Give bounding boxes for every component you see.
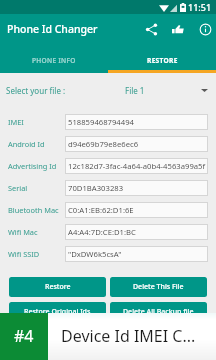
button[interactable]: About — [198, 22, 212, 36]
staticText: Android Id — [8, 139, 65, 149]
staticText: 11:51 — [188, 1, 212, 13]
button[interactable]: Delete All Backup file — [110, 302, 207, 322]
button[interactable]: Restore — [9, 277, 106, 297]
button[interactable]: IMEI — [0, 111, 216, 133]
staticText: RESTORE — [147, 56, 178, 65]
staticText: Restore — [45, 282, 71, 292]
button[interactable]: Wifi SSID — [0, 243, 216, 265]
staticText: Bluetooth Mac — [8, 205, 65, 215]
button[interactable]: Bluetooth Mac — [0, 199, 216, 221]
staticText: Wifi Mac — [8, 227, 65, 237]
staticText: 12c182d7-3fac-4a64-a0b4-4563a99a5f — [68, 161, 206, 171]
staticText: C0:A1:EB:62:D1:6E — [68, 205, 134, 215]
staticText: Device Id IMEI C... — [61, 325, 196, 347]
button[interactable]: PHONE INFO — [0, 45, 108, 73]
button[interactable]: Share — [144, 22, 158, 36]
staticText: "DxDW6k5csA" — [68, 249, 122, 259]
staticText: Delete All Backup file — [123, 307, 194, 317]
staticText: Wifi SSID — [8, 249, 65, 259]
staticText: PHONE INFO — [32, 56, 76, 65]
button[interactable]: #4 — [0, 313, 48, 360]
staticText: d94e69b79e8e6ec6 — [68, 139, 139, 149]
staticText: Select your file : — [6, 85, 66, 96]
button[interactable]: Advertising Id — [0, 155, 216, 177]
button[interactable]: File 1 — [115, 80, 216, 101]
button[interactable]: Serial — [0, 177, 216, 199]
button[interactable]: Rate this app — [171, 22, 185, 36]
staticText: Serial — [8, 183, 65, 193]
staticText: Phone Id Changer — [7, 22, 98, 36]
button[interactable]: RESTORE — [108, 45, 216, 73]
staticText: File 1 — [125, 85, 145, 96]
staticText: IMEI — [8, 117, 65, 127]
button[interactable]: Wifi Mac — [0, 221, 216, 243]
staticText: Delete This File — [133, 282, 184, 292]
staticText: Restore Original Ids — [24, 307, 91, 317]
button[interactable]: Android Id — [0, 133, 216, 155]
staticText: Advertising Id — [8, 161, 65, 171]
staticText: 518859468794494 — [68, 117, 134, 127]
staticText: #4 — [14, 325, 34, 347]
staticText: A4:A4:7D:CE:D1:BC — [68, 227, 136, 237]
button[interactable]: Delete This File — [110, 277, 207, 297]
staticText: 70D1BA303283 — [68, 183, 124, 193]
button[interactable]: Restore Original Ids — [9, 302, 106, 322]
